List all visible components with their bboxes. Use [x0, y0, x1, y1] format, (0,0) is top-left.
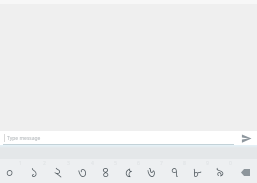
- button[interactable]: ৫: [119, 159, 142, 183]
- staticText: ২: [54, 164, 63, 180]
- staticText: ৩: [78, 164, 87, 180]
- staticText: ৭: [171, 164, 179, 180]
- button[interactable]: ৮: [188, 159, 211, 183]
- staticText: ৬: [147, 164, 156, 180]
- staticText: ৫: [125, 164, 133, 180]
- button[interactable]: ০: [0, 159, 24, 183]
- button[interactable]: ৩: [72, 159, 96, 183]
- button[interactable]: Backspace: [234, 159, 257, 183]
- button[interactable]: ১: [24, 159, 48, 183]
- staticText: ৮: [193, 164, 202, 180]
- staticText: ০: [6, 164, 14, 180]
- button[interactable]: Type message: [7, 131, 232, 144]
- staticText: 0: [229, 160, 232, 167]
- staticText: Type message: [7, 135, 41, 142]
- staticText: ৯: [216, 164, 225, 180]
- staticText: 4: [91, 160, 94, 167]
- staticText: 5: [114, 160, 117, 167]
- staticText: 8: [183, 160, 186, 167]
- button[interactable]: Send: [236, 131, 257, 144]
- button[interactable]: ৬: [142, 159, 165, 183]
- button[interactable]: ২: [48, 159, 72, 183]
- staticText: 3: [67, 160, 70, 167]
- button[interactable]: ৪: [96, 159, 119, 183]
- staticText: 7: [160, 160, 163, 167]
- staticText: 9: [206, 160, 209, 167]
- staticText: 1: [19, 160, 22, 167]
- staticText: 6: [137, 160, 140, 167]
- staticText: ৪: [102, 164, 110, 180]
- staticText: ১: [31, 164, 38, 180]
- button[interactable]: ৯: [211, 159, 234, 183]
- staticText: 2: [43, 160, 46, 167]
- button[interactable]: ৭: [165, 159, 188, 183]
